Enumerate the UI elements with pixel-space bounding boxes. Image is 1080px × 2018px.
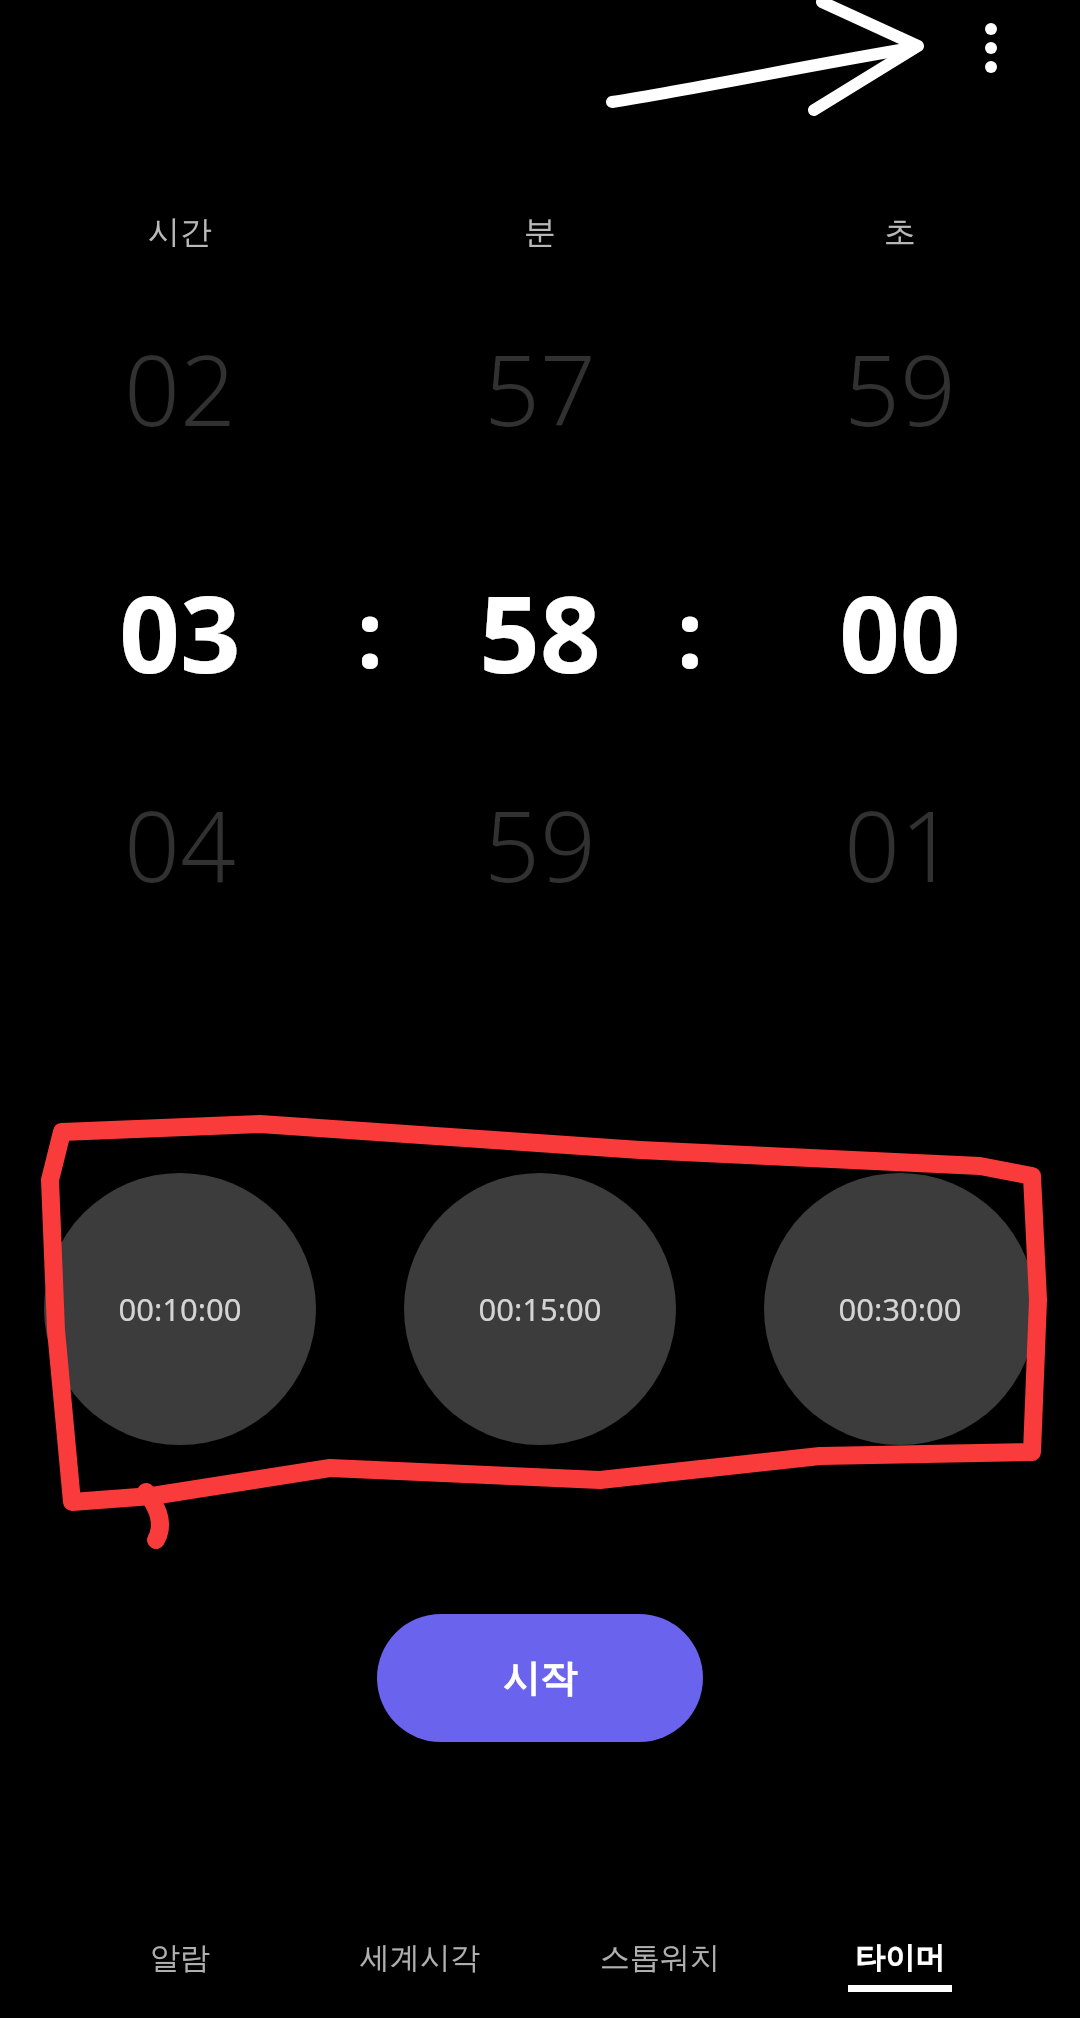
staticText: 59 xyxy=(844,321,956,454)
staticText: 분 xyxy=(524,212,556,252)
staticText: 58 xyxy=(479,560,601,704)
button[interactable]: 00:30:00 xyxy=(764,1173,1036,1445)
staticText: 시작 xyxy=(503,1655,577,1702)
staticText: 알람 xyxy=(150,1939,210,1977)
staticText: : xyxy=(677,570,703,695)
button[interactable]: 알람 xyxy=(60,1898,300,2018)
button[interactable]: 00:10:00 xyxy=(44,1173,316,1445)
button[interactable]: 00:15:00 xyxy=(404,1173,676,1445)
button[interactable]: More options xyxy=(948,0,1034,96)
staticText: 02 xyxy=(124,321,236,454)
staticText: 스톱워치 xyxy=(600,1939,720,1977)
button[interactable]: 시작 xyxy=(377,1614,703,1742)
staticText: 세계시각 xyxy=(360,1939,480,1977)
staticText: 00:15:00 xyxy=(478,1288,602,1330)
staticText: 04 xyxy=(124,777,236,910)
staticText: 57 xyxy=(484,321,596,454)
staticText: 00 xyxy=(839,560,961,704)
staticText: 01 xyxy=(844,777,956,910)
staticText: : xyxy=(357,570,383,695)
button[interactable]: 세계시각 xyxy=(300,1898,540,2018)
button[interactable]: 스톱워치 xyxy=(540,1898,780,2018)
staticText: 00:30:00 xyxy=(838,1288,962,1330)
staticText: 시간 xyxy=(148,212,212,252)
button[interactable]: 타이머 xyxy=(780,1898,1020,2018)
staticText: 타이머 xyxy=(855,1939,945,1977)
staticText: 03 xyxy=(119,560,241,704)
staticText: 59 xyxy=(484,777,596,910)
staticText: 00:10:00 xyxy=(118,1288,242,1330)
staticText: 초 xyxy=(884,212,916,252)
